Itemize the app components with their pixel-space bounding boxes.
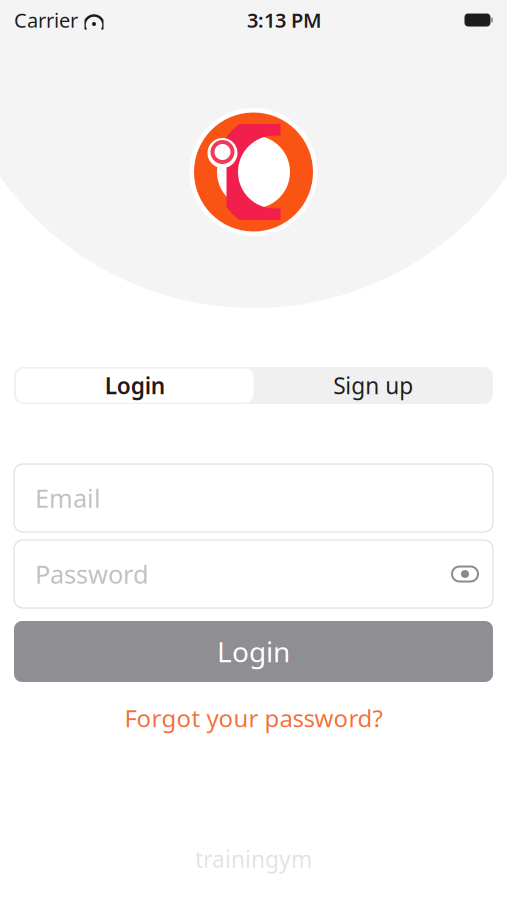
staticText: 3:13 PM: [247, 7, 322, 33]
staticText: Login: [217, 633, 290, 670]
staticText: Sign up: [333, 370, 413, 400]
button[interactable]: Forgot your password?: [112, 698, 394, 738]
staticText: Login: [105, 370, 165, 400]
button[interactable]: Show password: [445, 554, 485, 594]
staticText: trainingym: [195, 844, 312, 874]
button[interactable]: Login: [14, 368, 253, 402]
button[interactable]: Sign up: [253, 368, 493, 402]
staticText: Email: [35, 481, 101, 515]
staticText: Forgot your password?: [124, 702, 382, 734]
staticText: Password: [35, 557, 149, 591]
button[interactable]: Login: [14, 621, 493, 682]
staticText: Carrier: [14, 7, 78, 33]
